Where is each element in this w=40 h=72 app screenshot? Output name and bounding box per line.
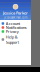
staticText: Privacy [6,29,19,34]
staticText: Jessica Parker [3,10,28,16]
button[interactable]: Privacy [0,29,31,33]
button[interactable]: Notifications [0,25,31,29]
button[interactable]: Account [0,21,31,25]
staticText: Help & Support [6,34,19,45]
button[interactable]: Help & Support [0,37,31,41]
staticText: Notifications [6,25,27,30]
staticText: Account [6,21,20,26]
staticText: jessica@email.com [4,16,27,19]
